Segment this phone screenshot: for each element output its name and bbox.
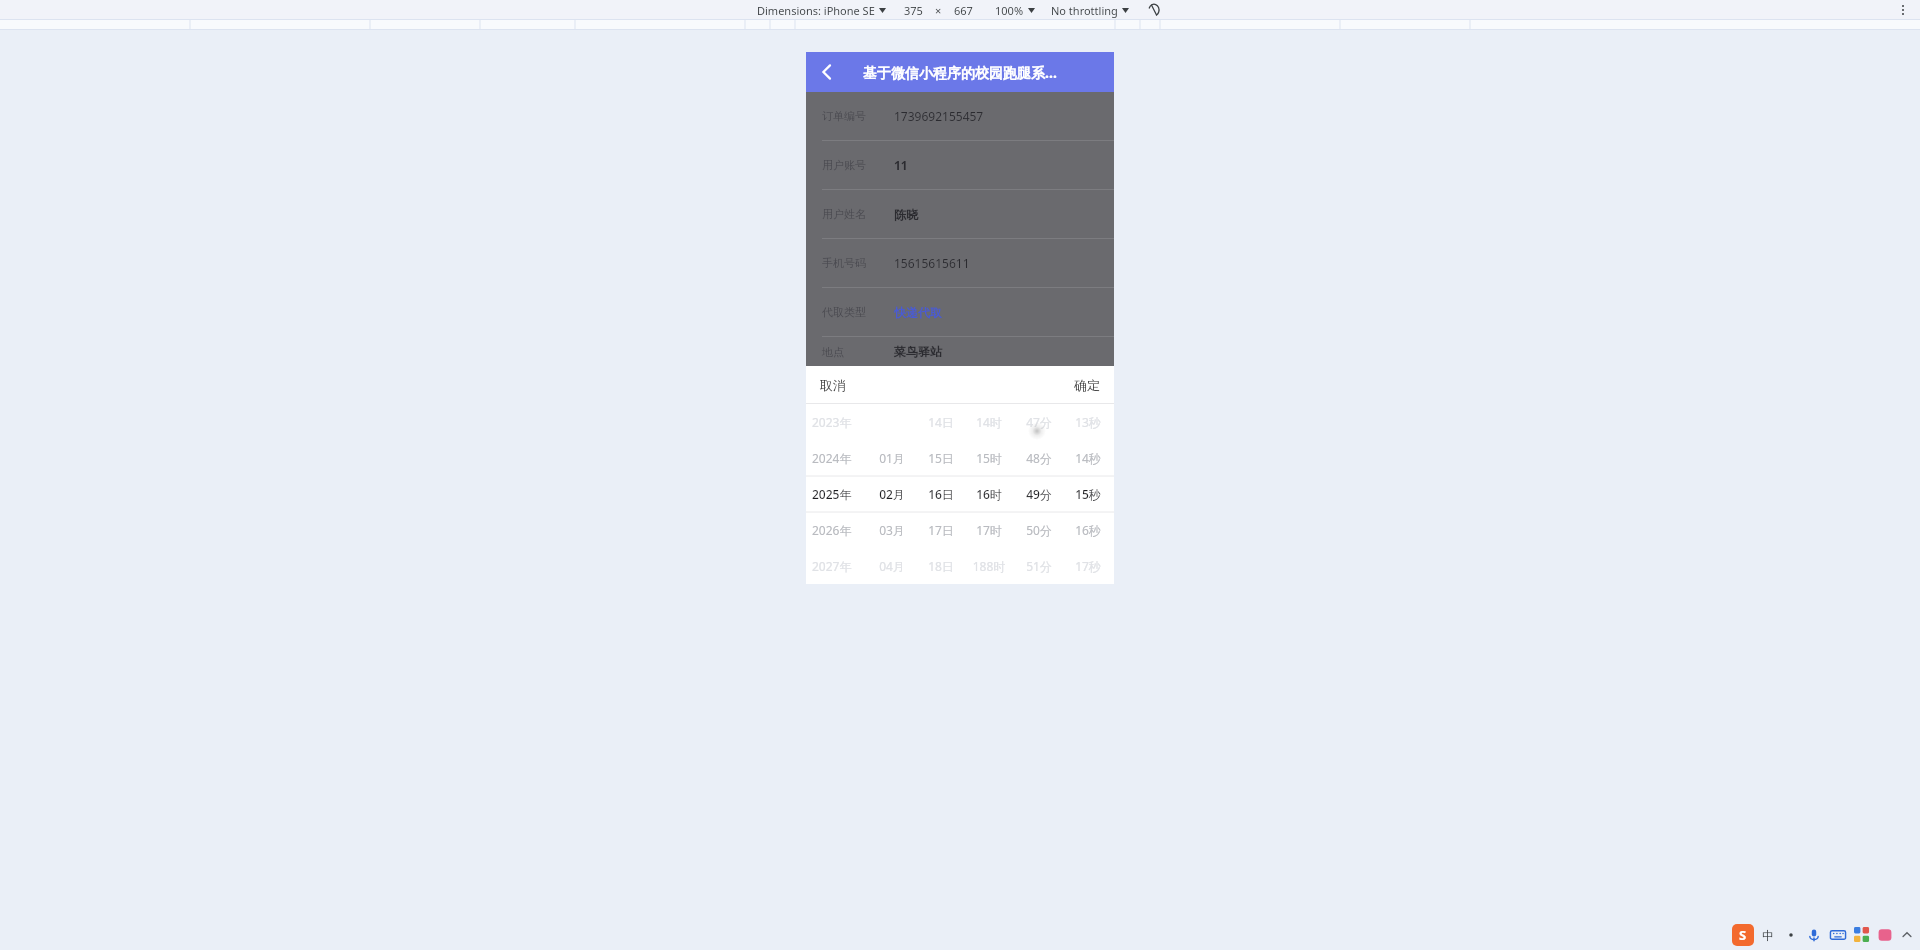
staticText: 菜鸟驿站 [894, 344, 942, 359]
staticText: No throttling [1051, 3, 1118, 18]
staticText: S [1739, 926, 1747, 944]
button[interactable]: 47分 [1023, 404, 1055, 584]
staticText: 15615615611 [894, 255, 970, 271]
staticText: 15日 [926, 450, 956, 466]
staticText: 用户姓名 [822, 207, 866, 221]
button[interactable]: More options [1894, 1, 1912, 19]
staticText: 基于微信小程序的校园跑腿系… [863, 63, 1057, 82]
staticText: 48分 [1023, 450, 1055, 466]
staticText: 375 [904, 3, 923, 18]
staticText: 2026年 [812, 522, 858, 538]
staticText: 14日 [926, 414, 956, 430]
button[interactable]: Keyboard [1829, 926, 1847, 944]
button[interactable]: Expand tray [1900, 928, 1914, 942]
button[interactable]: 375 [904, 3, 923, 18]
staticText: 100% [995, 3, 1024, 18]
button[interactable]: 订单编号 [806, 92, 1114, 140]
button[interactable]: 14时 [972, 404, 1006, 584]
staticText: 16日 [926, 486, 956, 502]
button[interactable]: 中 [1762, 928, 1774, 943]
button[interactable]: 667 [954, 3, 973, 18]
staticText: 2027年 [812, 558, 858, 574]
button[interactable]: 2023年 [812, 404, 858, 584]
staticText: 04月 [875, 558, 909, 574]
staticText: 02月 [875, 486, 909, 502]
staticText: 14秒 [1072, 450, 1104, 466]
staticText: Dimensions: iPhone SE [757, 3, 875, 18]
button[interactable]: 手机号码 [806, 239, 1114, 287]
staticText: 确定 [1074, 377, 1100, 393]
staticText: 2025年 [812, 486, 858, 502]
staticText: 中 [1762, 928, 1774, 943]
button[interactable]: 01月 [875, 404, 909, 584]
staticText: 17时 [972, 522, 1006, 538]
staticText: 2023年 [812, 414, 858, 430]
button[interactable]: 13秒 [1072, 404, 1104, 584]
staticText: 01月 [875, 450, 909, 466]
staticText: 17秒 [1072, 558, 1104, 574]
staticText: 2024年 [812, 450, 858, 466]
staticText: 代取类型 [822, 305, 866, 319]
button[interactable]: No throttling [1051, 3, 1129, 18]
button[interactable]: 100% [995, 3, 1035, 18]
staticText: 用户账号 [822, 158, 866, 172]
button[interactable]: Apps [1854, 927, 1870, 943]
staticText: 03月 [875, 522, 909, 538]
staticText: 188时 [972, 558, 1006, 574]
button[interactable]: 用户账号 [806, 141, 1114, 189]
button[interactable]: 地点 [806, 337, 1114, 366]
staticText: 15时 [972, 450, 1006, 466]
staticText: 取消 [820, 377, 846, 393]
button[interactable]: Voice input [1806, 927, 1822, 943]
button[interactable]: Sogou input [1732, 924, 1754, 946]
button[interactable]: Punctuation [1783, 927, 1799, 943]
staticText: 13秒 [1072, 414, 1104, 430]
staticText: 16秒 [1072, 522, 1104, 538]
staticText: 1739692155457 [894, 108, 984, 124]
button[interactable]: 取消 [806, 366, 860, 403]
button[interactable]: Skin [1877, 927, 1893, 943]
staticText: 11 [894, 157, 908, 173]
staticText: 陈晓 [894, 207, 918, 222]
staticText: 17日 [926, 522, 956, 538]
staticText: 地点 [822, 345, 844, 359]
staticText: 订单编号 [822, 109, 866, 123]
staticText: 手机号码 [822, 256, 866, 270]
button[interactable]: Back [812, 57, 842, 87]
button[interactable]: 14日 [926, 404, 956, 584]
staticText: × [935, 3, 942, 18]
staticText: 50分 [1023, 522, 1055, 538]
staticText: 51分 [1023, 558, 1055, 574]
staticText: 667 [954, 3, 973, 18]
button[interactable]: Dimensions: iPhone SE [757, 3, 886, 18]
staticText: 47分 [1023, 414, 1055, 430]
staticText: 快递代取 [894, 305, 942, 320]
staticText: 15秒 [1072, 486, 1104, 502]
staticText: 16时 [972, 486, 1006, 502]
button[interactable]: 确定 [1060, 366, 1114, 403]
button[interactable]: 用户姓名 [806, 190, 1114, 238]
staticText: 49分 [1023, 486, 1055, 502]
staticText: 14时 [972, 414, 1006, 430]
staticText: 18日 [926, 558, 956, 574]
button[interactable]: 代取类型 [806, 288, 1114, 336]
button[interactable]: Toggle device orientation [1145, 1, 1163, 19]
